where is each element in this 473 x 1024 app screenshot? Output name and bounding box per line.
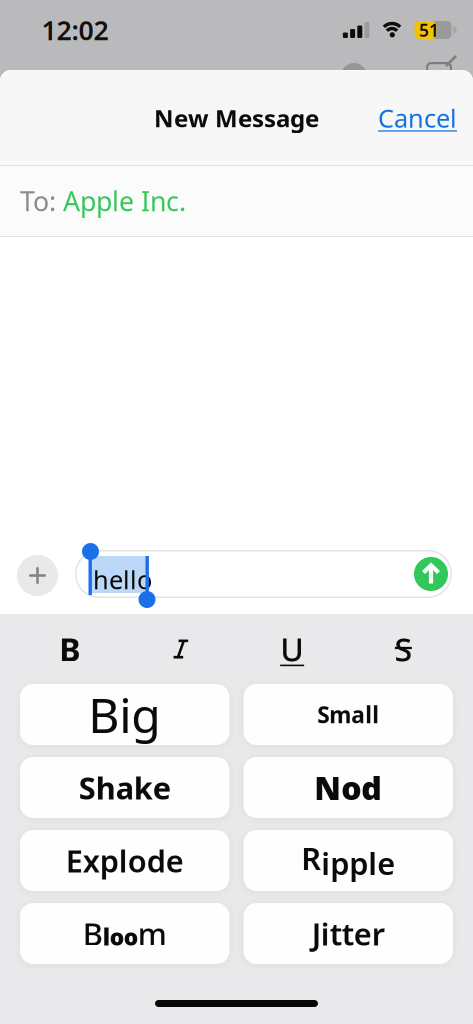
staticText: Cancel: [378, 101, 457, 135]
button[interactable]: Explode: [20, 830, 229, 891]
staticText: Explode: [66, 840, 184, 881]
staticText: U: [280, 628, 304, 670]
staticText: Small: [317, 699, 379, 729]
staticText: Jitter: [312, 913, 385, 954]
staticText: Big: [88, 683, 161, 746]
staticText: B: [59, 628, 80, 670]
staticText: Nod: [314, 766, 382, 809]
button[interactable]: Cancel: [378, 101, 457, 135]
staticText: Shake: [79, 767, 171, 808]
staticText: 51: [419, 18, 439, 41]
staticText: 12:02: [41, 12, 108, 48]
staticText: Bloom: [83, 913, 167, 954]
staticText: To:: [20, 183, 63, 219]
button[interactable]: To:: [0, 166, 473, 236]
button[interactable]: Shake: [20, 757, 229, 818]
button[interactable]: Big: [20, 684, 229, 745]
staticText: Ripple: [301, 838, 395, 883]
button[interactable]: Underline: [236, 628, 348, 670]
button[interactable]: Nod: [243, 757, 453, 818]
button[interactable]: Strikethrough: [348, 628, 459, 670]
button[interactable]: Add attachment: [17, 555, 58, 596]
staticText: New Message: [154, 102, 319, 134]
button[interactable]: Bloom: [20, 903, 229, 964]
staticText: Apple Inc.: [63, 183, 186, 219]
staticText: S: [394, 628, 412, 670]
button[interactable]: Small: [243, 684, 453, 745]
button[interactable]: Bold: [14, 628, 125, 670]
button[interactable]: Italic: [125, 639, 236, 658]
staticText: hello: [93, 562, 152, 596]
button[interactable]: Ripple: [243, 830, 453, 891]
button[interactable]: Send: [414, 557, 448, 591]
button[interactable]: Jitter: [243, 903, 453, 964]
